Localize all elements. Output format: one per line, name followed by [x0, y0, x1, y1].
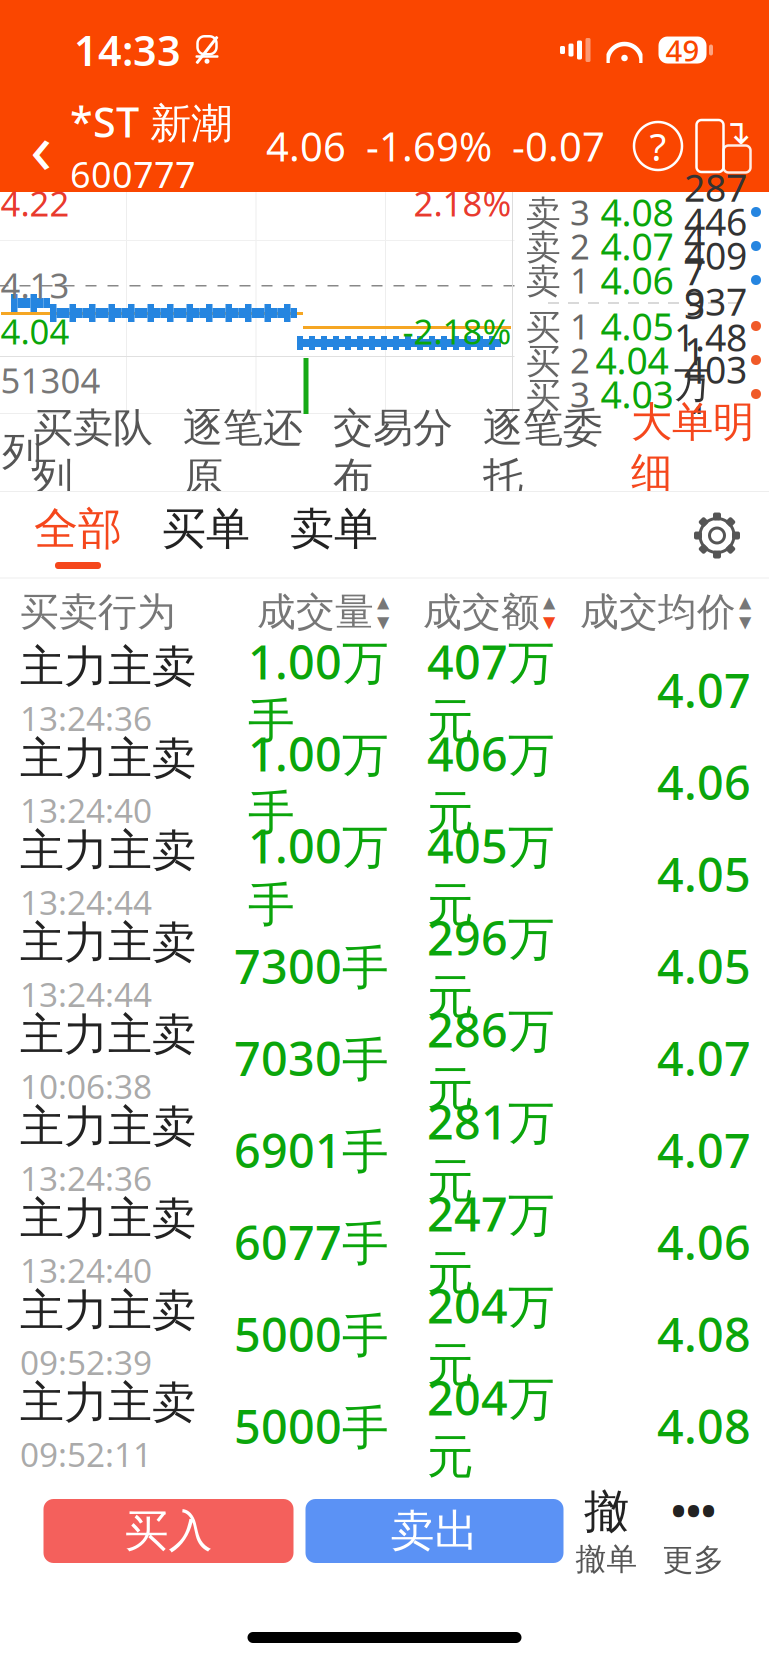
staticText: ▲	[543, 593, 555, 611]
button[interactable]: 逐笔还原	[168, 422, 318, 482]
staticText: 卖出	[390, 1504, 478, 1558]
button[interactable]: 买入	[43, 1499, 293, 1563]
button[interactable]: 主力主卖	[0, 736, 769, 828]
staticText: 1.00万手	[248, 814, 389, 934]
button[interactable]: 成交额	[389, 580, 555, 644]
button[interactable]: 主力主卖	[0, 920, 769, 1012]
staticText: 7300手	[234, 935, 389, 997]
button[interactable]: 主力主卖	[0, 1380, 769, 1472]
button[interactable]: 主力主卖	[0, 644, 769, 736]
staticText: 全部	[34, 502, 122, 556]
staticText: 407万元	[427, 630, 555, 750]
staticText: 1.00万手	[248, 722, 389, 842]
staticText: 买卖行为	[20, 588, 176, 636]
button[interactable]: 全部	[14, 493, 142, 577]
button[interactable]: 主力主卖	[0, 1012, 769, 1104]
button[interactable]: •••	[649, 1493, 737, 1569]
button[interactable]: 成交量	[223, 580, 389, 644]
staticText: •••	[671, 1483, 716, 1536]
staticText: 13:24:40	[20, 1248, 152, 1292]
staticText: 281万元	[427, 1090, 555, 1210]
staticText: 撤	[584, 1484, 629, 1539]
staticText: 逐笔还原	[183, 403, 303, 502]
staticText: 4.07	[657, 1119, 751, 1181]
staticText: 4.07	[600, 221, 673, 271]
staticText: 13:24:44	[20, 972, 152, 1016]
staticText: 296万元	[427, 906, 555, 1026]
staticText: 4.06	[657, 1211, 751, 1273]
staticText: 600777	[70, 150, 196, 198]
staticText: 13:24:44	[20, 880, 152, 924]
staticText: 主力主卖	[20, 732, 196, 786]
staticText: 2874	[684, 162, 747, 262]
staticText: 主力主卖	[20, 1192, 196, 1246]
staticText: 4.06 -1.69% -0.07	[266, 119, 605, 172]
staticText: 4467	[684, 196, 747, 296]
staticText: 4.08	[600, 187, 673, 237]
staticText: 1.48万	[674, 312, 747, 408]
staticText: 09:52:11	[20, 1432, 152, 1476]
button[interactable]: 主力主卖	[0, 1288, 769, 1380]
staticText: 1.00万手	[248, 630, 389, 750]
staticText: 51304	[0, 357, 100, 403]
staticText: 09:52:39	[20, 1340, 152, 1384]
button[interactable]: 大单明细	[618, 419, 767, 485]
staticText: 买 2	[526, 337, 590, 383]
staticText: 405万元	[427, 814, 555, 934]
staticText: 4.22	[0, 180, 69, 226]
button[interactable]: 主力主卖	[0, 1104, 769, 1196]
staticText: 7030手	[234, 1027, 389, 1089]
button[interactable]: 主力主卖	[0, 1196, 769, 1288]
staticText: 4.05	[657, 935, 751, 997]
staticText: 买单	[162, 502, 250, 556]
button[interactable]: 卖出	[305, 1499, 563, 1563]
staticText: 4.07	[657, 1027, 751, 1089]
staticText: 247万元	[427, 1182, 555, 1302]
button[interactable]: 逐笔委托	[468, 422, 618, 482]
staticText: 5000手	[234, 1395, 389, 1457]
staticText: 4.04	[0, 308, 69, 354]
staticText: 286万元	[427, 998, 555, 1118]
staticText: 成交量	[257, 588, 374, 636]
button[interactable]: 设置	[685, 503, 749, 567]
staticText: 49	[665, 30, 699, 69]
staticText: ▲	[377, 593, 389, 611]
staticText: 13:24:40	[20, 788, 152, 832]
staticText: 大单明细	[631, 397, 754, 498]
staticText: 主力主卖	[20, 916, 196, 970]
button[interactable]: 成交均价	[555, 580, 751, 644]
button[interactable]: 主力主卖	[0, 828, 769, 920]
staticText: 4.05	[600, 301, 673, 351]
staticText: 5000手	[234, 1303, 389, 1365]
staticText: 204万元	[427, 1274, 555, 1394]
staticText: ▼	[739, 613, 751, 631]
staticText: 13:24:36	[20, 1156, 152, 1200]
button[interactable]: 返回	[12, 109, 70, 183]
staticText: 4093	[684, 230, 747, 330]
button[interactable]: 撤	[563, 1493, 649, 1569]
staticText: 4.03	[600, 369, 673, 419]
staticText: 4.05	[657, 843, 751, 905]
staticText: 成交额	[423, 588, 540, 636]
button[interactable]: 横屏	[689, 113, 755, 179]
button[interactable]: 买卖队列	[18, 422, 168, 482]
staticText: ▼	[377, 613, 389, 631]
button[interactable]: 交易分布	[318, 422, 468, 482]
staticText: ?	[649, 120, 666, 172]
staticText: ↴	[722, 112, 751, 152]
staticText: 4.06	[657, 751, 751, 813]
staticText: 14:33	[74, 23, 181, 77]
staticText: ▼	[543, 613, 555, 631]
staticText: -2.18%	[402, 308, 511, 354]
staticText: 买 3	[526, 371, 590, 417]
staticText: 10:06:38	[20, 1064, 152, 1108]
staticText: 列	[2, 428, 42, 477]
staticText: 主力主卖	[20, 824, 196, 878]
staticText: 4.04	[595, 335, 668, 385]
button[interactable]: 卖单	[270, 493, 398, 577]
staticText: 6901手	[234, 1119, 389, 1181]
button[interactable]: 买单	[142, 493, 270, 577]
button[interactable]: 帮助	[627, 113, 689, 179]
staticText: ‹	[30, 98, 52, 194]
staticText: 4.13	[0, 262, 69, 308]
